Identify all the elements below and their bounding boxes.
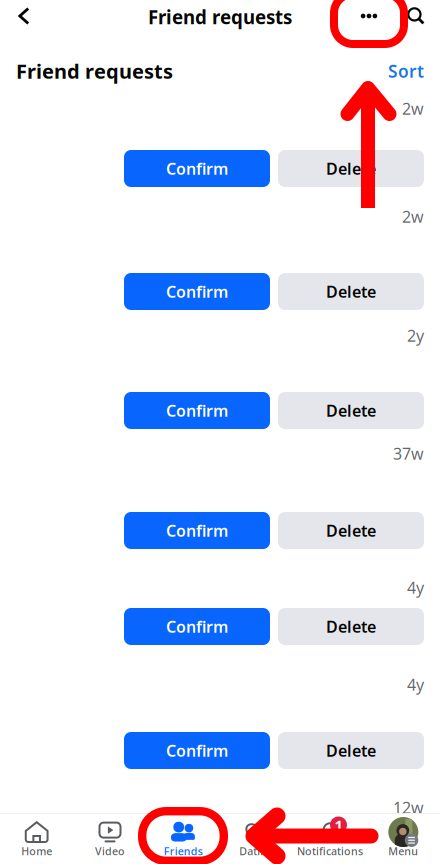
staticText: Friend requests [148, 5, 292, 29]
staticText: 12w [393, 797, 424, 818]
button[interactable]: Back [2, 0, 46, 33]
button[interactable]: Friends [147, 814, 220, 864]
staticText: Delete [326, 400, 376, 421]
button[interactable]: Sort [388, 55, 424, 86]
staticText: Confirm [166, 281, 228, 302]
staticText: 2y [407, 325, 424, 346]
button[interactable]: Delete [278, 150, 424, 187]
staticText: Confirm [166, 158, 228, 179]
staticText: 1 [334, 815, 342, 835]
staticText: Confirm [166, 740, 228, 761]
staticText: Delete [326, 740, 376, 761]
button[interactable]: Video [73, 814, 147, 864]
button[interactable]: Confirm [124, 150, 270, 187]
button[interactable]: Delete [278, 273, 424, 310]
button[interactable]: Search [399, 0, 433, 32]
staticText: Sort [388, 59, 424, 82]
button[interactable]: Confirm [124, 392, 270, 429]
staticText: Video [95, 844, 125, 858]
button[interactable]: Confirm [124, 732, 270, 769]
button[interactable]: Confirm [124, 608, 270, 645]
staticText: Friend requests [16, 58, 173, 84]
staticText: 37w [393, 443, 424, 464]
staticText: Delete [326, 616, 376, 637]
staticText: 4y [407, 577, 424, 598]
button[interactable]: Delete [278, 392, 424, 429]
staticText: Menu [388, 844, 418, 858]
staticText: Friends [164, 844, 203, 858]
staticText: Delete [326, 158, 376, 179]
staticText: Confirm [166, 616, 228, 637]
staticText: Confirm [166, 520, 228, 541]
staticText: 4y [407, 674, 424, 695]
button[interactable]: More options [352, 0, 386, 32]
button[interactable]: Menu [367, 814, 440, 864]
button[interactable]: Home [0, 814, 73, 864]
button[interactable]: Delete [278, 608, 424, 645]
button[interactable]: 1 [293, 814, 367, 864]
staticText: Notifications [297, 844, 363, 858]
button[interactable]: Dating [220, 814, 293, 864]
button[interactable]: Delete [278, 512, 424, 549]
staticText: Confirm [166, 400, 228, 421]
button[interactable]: Confirm [124, 512, 270, 549]
button[interactable]: Delete [278, 732, 424, 769]
staticText: Dating [239, 844, 274, 858]
staticText: Delete [326, 281, 376, 302]
staticText: Delete [326, 520, 376, 541]
staticText: 2w [402, 206, 424, 227]
button[interactable]: Confirm [124, 273, 270, 310]
staticText: 2w [402, 98, 424, 119]
staticText: Home [21, 844, 52, 858]
